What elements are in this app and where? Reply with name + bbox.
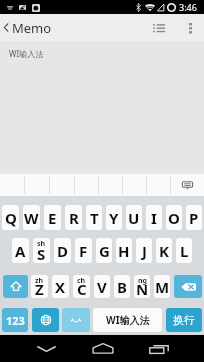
button[interactable]: D	[54, 238, 71, 263]
button[interactable]: Delete	[174, 275, 202, 298]
staticText: G	[99, 241, 110, 261]
button[interactable]: I	[146, 205, 162, 230]
staticText: D	[57, 241, 68, 261]
button[interactable]: L	[176, 238, 192, 263]
button[interactable]: Hide keyboard	[24, 335, 68, 362]
button[interactable]: X	[52, 275, 69, 298]
button[interactable]: Y	[106, 205, 122, 230]
staticText: zh	[35, 276, 44, 286]
button[interactable]: 换行	[166, 308, 202, 332]
button[interactable]: F	[75, 238, 92, 263]
staticText: W	[24, 208, 39, 228]
staticText: A	[15, 241, 26, 261]
button[interactable]: V	[94, 275, 110, 298]
button[interactable]: P	[186, 205, 202, 230]
staticText: O	[168, 208, 180, 228]
staticText: K	[159, 241, 169, 261]
button[interactable]: sh	[33, 238, 50, 263]
staticText: I	[151, 208, 157, 228]
button[interactable]: Shift	[3, 275, 28, 298]
staticText: ch	[77, 276, 86, 286]
button[interactable]: H	[116, 238, 132, 263]
staticText: S	[37, 244, 46, 263]
button[interactable]: E	[44, 205, 61, 230]
button[interactable]: Recent apps	[137, 335, 181, 362]
button[interactable]: M	[154, 275, 170, 298]
staticText: F	[79, 241, 88, 261]
button[interactable]: J	[136, 238, 152, 263]
staticText: U	[128, 208, 140, 228]
staticText: B	[117, 277, 127, 297]
staticText: V	[97, 277, 107, 297]
staticText: H	[118, 241, 130, 261]
staticText: C	[77, 279, 87, 298]
button[interactable]: T	[86, 205, 102, 230]
button[interactable]: G	[96, 238, 112, 263]
staticText: R	[69, 208, 79, 228]
staticText: 3:46	[179, 1, 197, 13]
button[interactable]: WI输入法	[93, 308, 162, 332]
button[interactable]: Back	[0, 14, 58, 41]
button[interactable]: O	[166, 205, 182, 230]
button[interactable]: K	[156, 238, 172, 263]
staticText: L	[180, 241, 189, 261]
button[interactable]: R	[65, 205, 82, 230]
other: Back	[3, 22, 9, 33]
button[interactable]: More options	[177, 14, 203, 41]
button[interactable]: U	[126, 205, 142, 230]
staticText: P	[189, 208, 199, 228]
staticText: M	[155, 277, 170, 297]
button[interactable]: Keyboard settings	[171, 174, 204, 196]
staticText: Memo	[12, 19, 52, 37]
button[interactable]: ch	[73, 275, 90, 298]
staticText: Q	[5, 208, 17, 228]
staticText: WI输入法	[9, 48, 44, 59]
button[interactable]: B	[114, 275, 130, 298]
staticText: E	[48, 208, 57, 228]
staticText: Y	[109, 208, 119, 228]
staticText: Z	[35, 279, 44, 298]
button[interactable]: Home	[81, 335, 125, 362]
staticText: 123	[6, 313, 25, 328]
staticText: J	[142, 241, 147, 261]
staticText: WI输入法	[106, 313, 150, 327]
staticText: ng	[138, 276, 147, 286]
button[interactable]: List view	[141, 14, 177, 41]
button[interactable]: Change language	[32, 308, 59, 332]
staticText: N	[136, 279, 149, 298]
staticText: X	[55, 277, 66, 297]
staticText: sh	[37, 239, 46, 249]
button[interactable]: A	[12, 238, 29, 263]
button[interactable]: Emoji	[62, 308, 90, 332]
staticText: T	[90, 208, 99, 228]
button[interactable]: ng	[134, 275, 150, 298]
button[interactable]: Q	[2, 205, 19, 230]
button[interactable]: W	[23, 205, 40, 230]
staticText: 换行	[173, 313, 195, 327]
button[interactable]: zh	[31, 275, 48, 298]
button[interactable]: 123	[2, 308, 28, 332]
